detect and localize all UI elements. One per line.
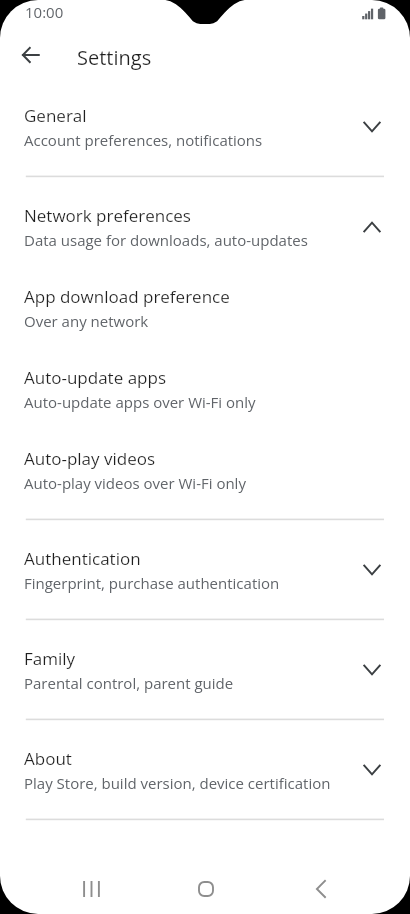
- button[interactable]: Auto-play videos: [0, 438, 410, 519]
- staticText: Family: [24, 647, 76, 670]
- staticText: 10:00: [25, 2, 64, 22]
- staticText: Auto-update apps over Wi-Fi only: [24, 392, 256, 412]
- button[interactable]: General: [0, 76, 410, 176]
- staticText: Fingerprint, purchase authentication: [24, 573, 280, 593]
- staticText: About: [24, 747, 72, 770]
- staticText: Auto-play videos over Wi-Fi only: [24, 473, 246, 493]
- staticText: Play Store, build version, device certif…: [24, 773, 331, 793]
- button[interactable]: Authentication: [0, 519, 410, 619]
- button[interactable]: Home: [161, 862, 251, 914]
- staticText: Network preferences: [24, 204, 191, 227]
- button[interactable]: Back: [276, 862, 366, 914]
- button[interactable]: Navigate up: [7, 32, 53, 78]
- staticText: Account preferences, notifications: [24, 130, 263, 150]
- staticText: General: [24, 104, 87, 127]
- button[interactable]: About: [0, 719, 410, 819]
- staticText: Auto-update apps: [24, 366, 166, 389]
- staticText: Parental control, parent guide: [24, 673, 234, 693]
- button[interactable]: Auto-update apps: [0, 357, 410, 438]
- staticText: Settings: [77, 44, 152, 71]
- button[interactable]: Recent apps: [46, 862, 136, 914]
- staticText: Over any network: [24, 311, 149, 331]
- button[interactable]: Family: [0, 619, 410, 719]
- staticText: Data usage for downloads, auto-updates: [24, 230, 308, 250]
- staticText: Authentication: [24, 547, 141, 570]
- staticText: Auto-play videos: [24, 447, 156, 470]
- button[interactable]: App download preference: [0, 276, 410, 357]
- staticText: App download preference: [24, 285, 230, 308]
- button[interactable]: Network preferences: [0, 176, 410, 276]
